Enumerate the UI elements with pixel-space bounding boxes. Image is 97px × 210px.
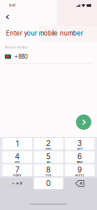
staticText: ABC [45, 147, 51, 150]
button[interactable]: +880 [0, 49, 97, 63]
button[interactable]: 4 [2, 151, 32, 163]
staticText: Mobile Number [5, 46, 28, 49]
staticText: 4 [15, 152, 20, 161]
staticText: GHI [15, 160, 20, 164]
button[interactable]: 5 [34, 151, 63, 163]
staticText: WXYZ [75, 174, 84, 177]
staticText: 1 [16, 139, 19, 148]
button[interactable]: 8 [34, 164, 63, 176]
button[interactable]: 1 [2, 138, 32, 150]
staticText: DEF [77, 147, 82, 150]
staticText: 0 [46, 179, 51, 188]
staticText: +880 [14, 53, 28, 60]
staticText: MNO [77, 160, 83, 164]
button[interactable]: Delete [65, 178, 95, 189]
staticText: JKL [46, 160, 50, 164]
staticText: 5 [46, 152, 51, 161]
staticText: 2 [46, 139, 51, 148]
staticText: 6 [77, 152, 82, 161]
button[interactable]: 6 [65, 151, 95, 163]
button[interactable]: 3 [65, 138, 95, 150]
button[interactable]: 2 [34, 138, 63, 150]
staticText: 7 [15, 165, 19, 174]
button[interactable]: Back [1, 11, 13, 22]
staticText: 8 [46, 165, 51, 174]
staticText: 9:41 [9, 3, 15, 8]
button[interactable]: 0 [34, 178, 63, 189]
button[interactable]: 9 [65, 164, 95, 176]
button[interactable]: Symbols [2, 178, 32, 189]
staticText: 9 [77, 165, 82, 174]
staticText: 3 [77, 139, 82, 148]
staticText: + ∗ # [12, 181, 23, 186]
button[interactable]: Next [76, 114, 91, 130]
staticText: Enter your mobile number [6, 29, 83, 37]
staticText: TUV [45, 174, 51, 177]
button[interactable]: 7 [2, 164, 32, 176]
staticText: PQRS [13, 174, 21, 177]
